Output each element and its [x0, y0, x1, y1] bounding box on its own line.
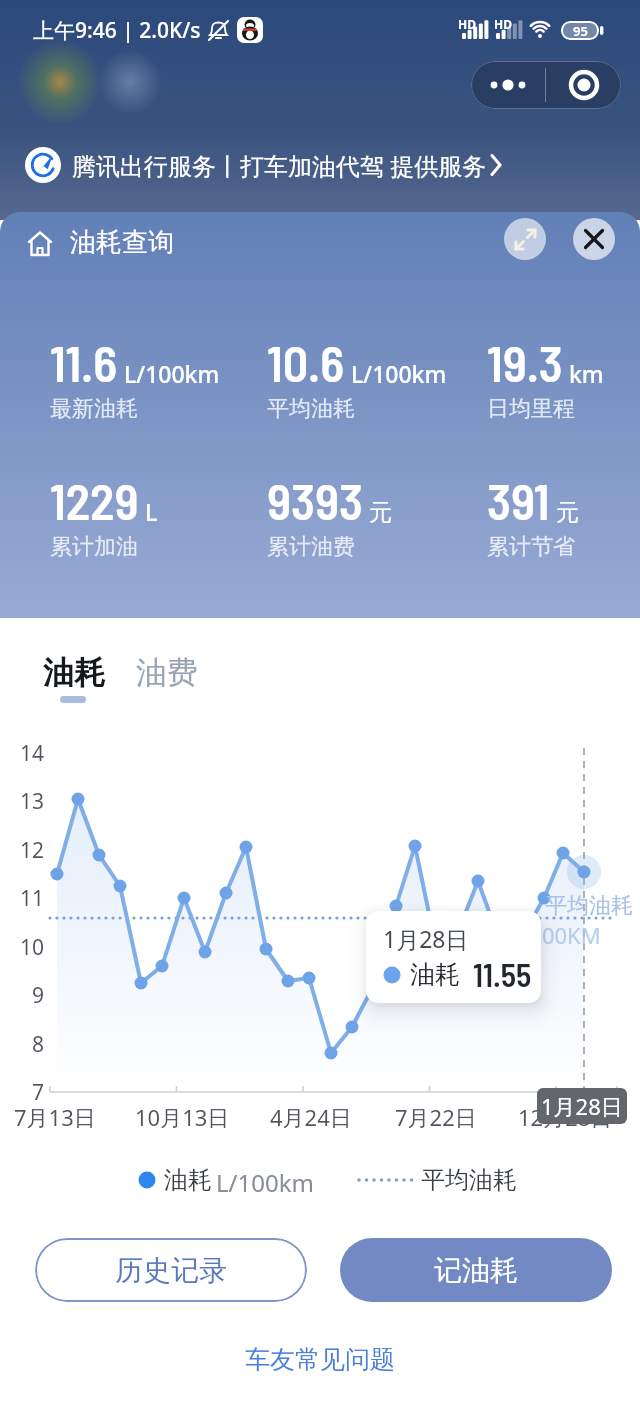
- staticText: km: [569, 358, 604, 389]
- button[interactable]: 历史记录: [35, 1238, 307, 1302]
- button[interactable]: 车友常见问题: [0, 1338, 640, 1381]
- staticText: 11.55: [473, 955, 532, 993]
- staticText: 腾讯出行服务丨打车加油代驾 提供服务: [72, 149, 487, 182]
- staticText: 元: [369, 498, 392, 527]
- staticText: 95: [573, 22, 588, 40]
- staticText: 11.6: [50, 332, 118, 392]
- staticText: 12月28日: [518, 1102, 613, 1132]
- staticText: 最新油耗: [50, 395, 138, 423]
- staticText: 累计油费: [267, 533, 355, 561]
- staticText: 10: [20, 933, 45, 962]
- staticText: 12: [20, 836, 45, 865]
- staticText: 8: [32, 1030, 45, 1059]
- staticText: 10.6L/100KM: [466, 920, 601, 950]
- staticText: 11: [20, 884, 45, 913]
- button[interactable]: [504, 218, 546, 260]
- button[interactable]: [573, 218, 615, 260]
- staticText: 油耗: [410, 959, 460, 990]
- staticText: 日均里程: [487, 395, 575, 423]
- staticText: 7月13日: [14, 1102, 96, 1132]
- staticText: HD: [458, 16, 476, 32]
- staticText: 历史记录: [115, 1253, 227, 1288]
- button[interactable]: 油耗查询: [70, 226, 174, 259]
- staticText: 累计节省: [487, 533, 575, 561]
- staticText: 14: [20, 739, 45, 768]
- staticText: 4月24日: [270, 1102, 352, 1132]
- staticText: 平均油耗: [267, 395, 355, 423]
- staticText: 391: [487, 470, 550, 530]
- staticText: 上午9:46 | 2.0K/s: [33, 16, 201, 45]
- button[interactable]: [471, 61, 545, 109]
- button[interactable]: 油耗: [30, 645, 120, 710]
- staticText: HD: [494, 16, 512, 32]
- staticText: 19.3: [487, 332, 563, 392]
- staticText: 油耗: [164, 1165, 212, 1195]
- staticText: 元: [556, 498, 579, 527]
- button[interactable]: 油费: [120, 645, 210, 710]
- staticText: 7: [32, 1078, 45, 1107]
- staticText: 1月28日: [541, 1091, 623, 1121]
- staticText: 10月13日: [135, 1102, 230, 1132]
- staticText: 10.6: [267, 332, 345, 392]
- staticText: L: [145, 496, 158, 527]
- button[interactable]: 腾讯出行服务丨打车加油代驾 提供服务: [0, 132, 640, 198]
- staticText: 累计加油: [50, 533, 138, 561]
- staticText: 车友常见问题: [245, 1344, 395, 1375]
- staticText: 1月28日: [383, 923, 469, 954]
- staticText: 9393: [267, 470, 363, 530]
- staticText: 油耗: [43, 653, 105, 692]
- staticText: 9: [32, 981, 45, 1010]
- staticText: 平均油耗: [545, 892, 633, 920]
- staticText: 13: [20, 787, 45, 816]
- staticText: 记油耗: [434, 1253, 518, 1288]
- staticText: 平均油耗: [421, 1165, 517, 1195]
- staticText: 7月22日: [395, 1102, 477, 1132]
- button[interactable]: 记油耗: [340, 1238, 612, 1302]
- button[interactable]: [546, 61, 621, 109]
- staticText: L/100km: [216, 1166, 314, 1199]
- staticText: 1229: [50, 470, 139, 530]
- staticText: L/100km: [124, 358, 220, 389]
- staticText: L/100km: [351, 358, 447, 389]
- staticText: 油费: [136, 653, 198, 692]
